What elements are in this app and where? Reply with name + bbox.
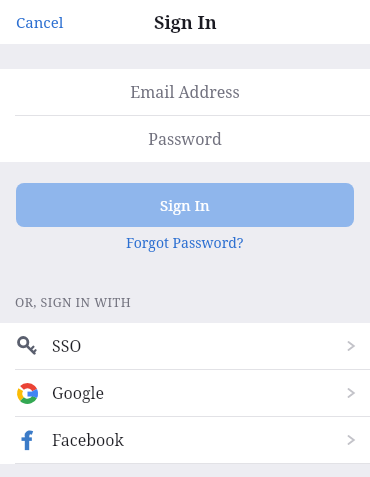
button[interactable]: Cancel [8, 6, 72, 38]
staticText: Forgot Password? [126, 233, 244, 252]
button[interactable]: Email Address [0, 69, 370, 115]
staticText: Sign In [160, 195, 210, 215]
button[interactable]: Sign in with Google [0, 370, 370, 416]
staticText: OR, SIGN IN WITH [15, 294, 131, 311]
staticText: Password [148, 128, 222, 150]
button[interactable]: Sign In [16, 183, 354, 227]
button[interactable]: Sign in with Facebook [0, 417, 370, 463]
button[interactable]: SSO [0, 323, 370, 369]
button[interactable]: Forgot Password? [116, 227, 254, 258]
staticText: Facebook [52, 429, 124, 451]
staticText: Google [52, 382, 105, 404]
staticText: Sign In [154, 10, 217, 35]
staticText: SSO [52, 335, 82, 357]
staticText: Cancel [16, 12, 64, 32]
other: Sign in with Google [17, 383, 38, 404]
button[interactable]: Password [0, 116, 370, 162]
other: SSO [17, 336, 37, 356]
other: Sign in with Facebook [16, 429, 38, 451]
staticText: Email Address [130, 81, 240, 103]
